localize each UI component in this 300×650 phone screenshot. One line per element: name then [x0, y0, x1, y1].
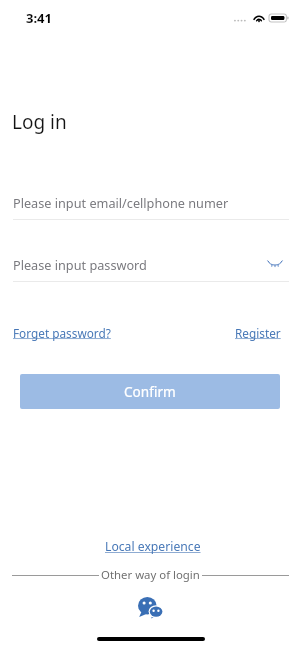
button[interactable]: Confirm: [20, 374, 280, 409]
staticText: Forget password?: [13, 325, 111, 341]
button[interactable]: Log in with WeChat: [138, 597, 164, 621]
staticText: Register: [235, 325, 281, 341]
button[interactable]: Show password: [264, 253, 286, 272]
button[interactable]: Local experience: [105, 538, 201, 555]
button[interactable]: Forget password?: [13, 325, 111, 341]
staticText: Confirm: [124, 382, 176, 401]
button[interactable]: Register: [235, 325, 281, 341]
staticText: Please input email/cellphone numer: [13, 194, 229, 211]
staticText: 3:41: [26, 9, 52, 27]
staticText: Log in: [12, 109, 67, 135]
button[interactable]: Please input password: [13, 248, 289, 282]
staticText: Local experience: [105, 538, 201, 555]
staticText: Other way of login: [101, 567, 200, 583]
button[interactable]: Please input email/cellphone numer: [13, 186, 289, 220]
staticText: Please input password: [13, 256, 147, 273]
